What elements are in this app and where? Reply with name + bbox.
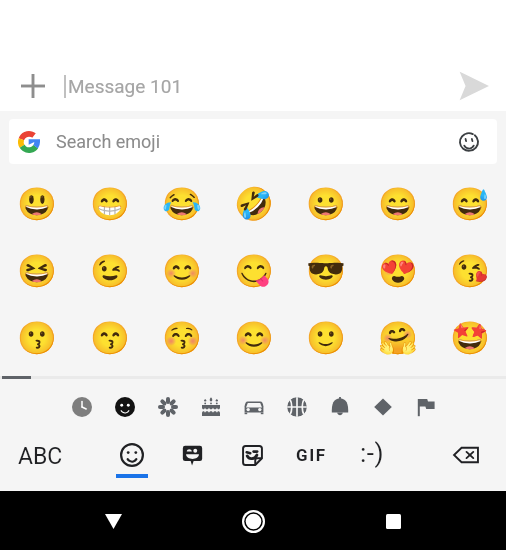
staticText: Search emoji: [56, 131, 161, 152]
staticText: 😉: [90, 252, 130, 290]
button[interactable]: 🤩: [434, 314, 506, 362]
button[interactable]: 😊: [146, 247, 218, 295]
button[interactable]: Activities: [275, 390, 318, 423]
button[interactable]: 🙂: [290, 314, 362, 362]
staticText: 😅: [450, 185, 490, 223]
staticText: 😍: [378, 252, 418, 290]
button[interactable]: 😘: [434, 247, 506, 295]
button[interactable]: Recent emoji: [60, 390, 103, 423]
button[interactable]: 😂: [146, 180, 218, 228]
staticText: 🤣: [234, 185, 274, 223]
button[interactable]: Avatar stickers: [228, 431, 276, 479]
staticText: 😀: [306, 185, 346, 223]
button[interactable]: 😗: [0, 314, 73, 362]
button[interactable]: 😉: [73, 247, 146, 295]
button[interactable]: Backspace: [442, 431, 490, 479]
button[interactable]: 😋: [218, 247, 290, 295]
button[interactable]: 🤗: [362, 314, 434, 362]
staticText: :-): [360, 438, 385, 468]
button[interactable]: Food and drink: [189, 390, 232, 423]
button[interactable]: Flags: [404, 390, 447, 423]
button[interactable]: 😅: [434, 180, 506, 228]
button[interactable]: Home: [229, 497, 277, 545]
staticText: 😄: [378, 185, 418, 223]
button[interactable]: Emoji: [108, 431, 156, 479]
staticText: 😚: [162, 319, 202, 357]
staticText: GIF: [296, 445, 327, 465]
button[interactable]: 😆: [0, 247, 73, 295]
staticText: 🤩: [450, 319, 490, 357]
button[interactable]: 😎: [290, 247, 362, 295]
staticText: 🙂: [306, 319, 346, 357]
button[interactable]: 😄: [362, 180, 434, 228]
staticText: 😋: [234, 252, 274, 290]
button[interactable]: 😚: [146, 314, 218, 362]
staticText: 😃: [17, 185, 57, 223]
staticText: 😁: [90, 185, 130, 223]
button[interactable]: Smileys and people: [103, 390, 146, 423]
button[interactable]: Back: [89, 497, 137, 545]
button[interactable]: Symbols: [361, 390, 404, 423]
staticText: 😙: [90, 319, 130, 357]
button[interactable]: ABC: [16, 432, 64, 480]
button[interactable]: 🤣: [218, 180, 290, 228]
button[interactable]: GIF: [287, 431, 335, 479]
button[interactable]: :-): [348, 429, 396, 477]
staticText: 😂: [162, 185, 202, 223]
staticText: ABC: [18, 443, 63, 470]
button[interactable]: Animals and nature: [146, 390, 189, 423]
button[interactable]: Search emoji: [9, 119, 497, 164]
staticText: 😆: [17, 252, 57, 290]
button[interactable]: Objects: [318, 390, 361, 423]
button[interactable]: 😁: [73, 180, 146, 228]
staticText: 🤗: [378, 319, 418, 357]
button[interactable]: 😊: [218, 314, 290, 362]
button[interactable]: 😍: [362, 247, 434, 295]
staticText: 😘: [450, 252, 490, 290]
button[interactable]: 😙: [73, 314, 146, 362]
button[interactable]: Travel and places: [232, 390, 275, 423]
button[interactable]: 😀: [290, 180, 362, 228]
button[interactable]: Recent apps: [369, 497, 417, 545]
staticText: Message 101: [68, 75, 183, 97]
button[interactable]: Stickers: [168, 431, 216, 479]
staticText: 😎: [306, 252, 346, 290]
button[interactable]: Send: [449, 62, 497, 110]
staticText: 😗: [17, 319, 57, 357]
button[interactable]: Add attachment: [9, 62, 57, 110]
button[interactable]: 😃: [0, 180, 73, 228]
staticText: 😊: [234, 319, 274, 357]
button[interactable]: Emoji keyboard: [449, 122, 489, 162]
staticText: 😊: [162, 252, 202, 290]
